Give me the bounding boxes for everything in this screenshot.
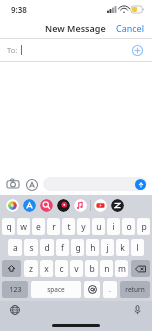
button[interactable]: h	[86, 239, 99, 256]
button[interactable]: Shift	[2, 260, 21, 277]
button[interactable]: Dictation	[130, 303, 144, 317]
staticText: return	[125, 285, 145, 294]
staticText: y	[81, 221, 86, 233]
button[interactable]: 123	[2, 281, 28, 298]
button[interactable]: w	[17, 218, 30, 235]
staticText: t	[67, 221, 71, 233]
button[interactable]: Send	[135, 179, 146, 190]
staticText: h	[90, 242, 96, 254]
button[interactable]: j	[101, 239, 114, 256]
staticText: To:	[7, 45, 18, 55]
button[interactable]: z	[24, 260, 38, 277]
staticText: n	[104, 263, 110, 275]
staticText: Cancel	[116, 22, 145, 34]
staticText: space	[47, 285, 65, 294]
button[interactable]: v	[70, 260, 83, 277]
button[interactable]: d	[40, 239, 54, 256]
button[interactable]: t	[62, 218, 75, 235]
button[interactable]: l	[131, 239, 144, 256]
button[interactable]: r	[47, 218, 60, 235]
button[interactable]: a	[8, 239, 22, 256]
button[interactable]: Switch keyboard	[8, 303, 22, 317]
button[interactable]: At sign	[84, 281, 100, 298]
button[interactable]: Photos	[6, 199, 19, 212]
button[interactable]: y	[77, 218, 90, 235]
staticText: a	[13, 242, 18, 254]
button[interactable]: App Store	[24, 177, 39, 192]
button[interactable]: YouTube	[94, 199, 107, 212]
button[interactable]: Music disc	[57, 199, 70, 212]
button[interactable]: space	[31, 281, 81, 298]
staticText: p	[141, 221, 147, 233]
staticText: f	[61, 242, 64, 254]
staticText: w	[20, 221, 27, 233]
staticText: b	[89, 263, 95, 275]
button[interactable]: k	[116, 239, 129, 256]
button[interactable]: c	[55, 260, 68, 277]
staticText: .	[109, 285, 111, 295]
button[interactable]: .	[103, 281, 117, 298]
button[interactable]: b	[85, 260, 98, 277]
button[interactable]: e	[32, 218, 45, 235]
staticText: r	[52, 221, 56, 233]
staticText: c	[59, 263, 64, 275]
staticText: v	[74, 263, 79, 275]
staticText: q	[6, 221, 12, 233]
button[interactable]: App Store	[23, 199, 36, 212]
staticText: s	[29, 242, 34, 254]
button[interactable]: m	[115, 260, 128, 277]
button[interactable]: Camera	[5, 176, 21, 192]
staticText: 9:38	[11, 4, 27, 15]
staticText: u	[96, 221, 102, 233]
button[interactable]: x	[40, 260, 53, 277]
button[interactable]: Cancel	[109, 19, 152, 37]
button[interactable]: Apple Music	[74, 199, 87, 212]
button[interactable]: Backspace	[131, 260, 150, 277]
button[interactable]: Add contact	[130, 43, 144, 57]
staticText: New Message	[45, 22, 106, 34]
button[interactable]: q	[2, 218, 15, 235]
staticText: e	[36, 221, 41, 233]
button[interactable]: return	[120, 281, 150, 298]
staticText: m	[118, 263, 126, 275]
staticText: z	[29, 263, 33, 275]
button[interactable]: u	[92, 218, 105, 235]
button[interactable]: n	[100, 260, 113, 277]
button[interactable]: Images	[40, 199, 53, 212]
button[interactable]: Zillow	[111, 199, 124, 212]
button[interactable]: s	[24, 239, 38, 256]
staticText: k	[120, 242, 125, 254]
staticText: d	[44, 242, 50, 254]
button[interactable]: p	[137, 218, 150, 235]
button[interactable]: f	[56, 239, 69, 256]
staticText: g	[75, 242, 81, 254]
staticText: j	[106, 242, 109, 254]
staticText: 123	[9, 285, 22, 295]
staticText: x	[44, 263, 49, 275]
button[interactable]: o	[122, 218, 135, 235]
button[interactable]: g	[71, 239, 84, 256]
staticText: l	[136, 242, 139, 254]
button[interactable]: i	[107, 218, 120, 235]
staticText: i	[112, 221, 115, 233]
button[interactable]: Send	[43, 177, 147, 191]
staticText: o	[126, 221, 132, 233]
